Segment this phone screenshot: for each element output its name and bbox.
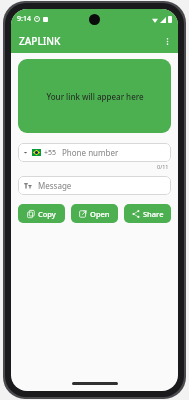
staticText: +55 — [44, 148, 57, 158]
button[interactable]: Open — [71, 204, 118, 223]
button[interactable]: More options — [156, 30, 178, 52]
button[interactable]: +55 — [18, 143, 171, 162]
staticText: Share — [143, 209, 164, 219]
button[interactable]: Your link will appear here — [18, 59, 171, 133]
staticText: Your link will appear here — [46, 91, 144, 102]
staticText: 0/11 — [157, 163, 169, 170]
button[interactable]: Share — [124, 204, 171, 223]
button[interactable]: Copy — [18, 204, 65, 223]
staticText: Phone number — [62, 147, 119, 158]
button[interactable]: Message — [18, 176, 171, 195]
staticText: Copy — [38, 209, 56, 219]
staticText: 9:14 — [17, 14, 31, 24]
staticText: ZAPLINK — [19, 34, 61, 48]
staticText: Message — [38, 180, 72, 191]
staticText: Open — [90, 209, 110, 219]
